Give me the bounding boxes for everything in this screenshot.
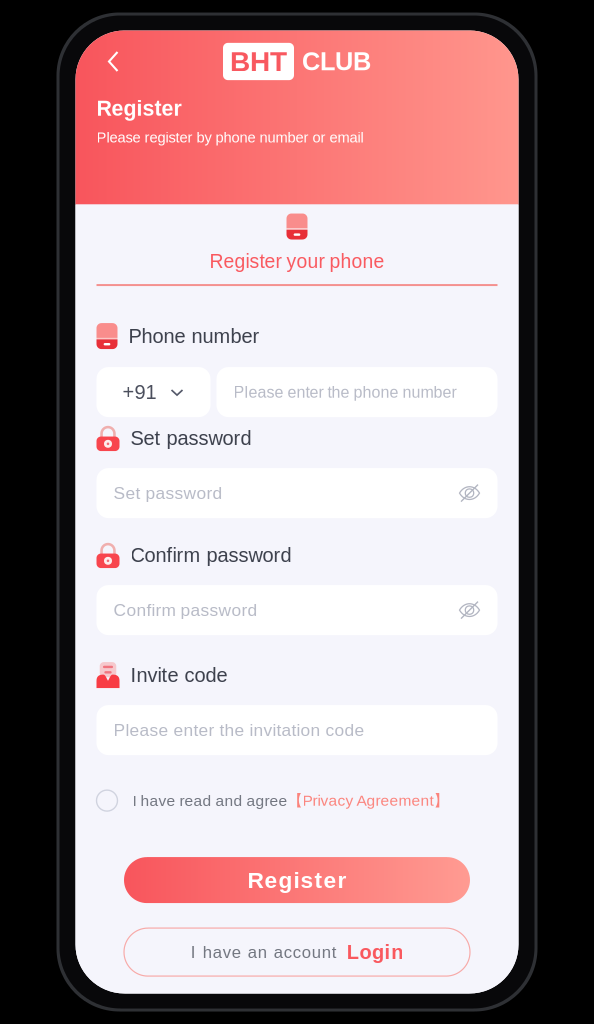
staticText: BHT — [230, 46, 287, 77]
staticText: Login — [347, 941, 403, 963]
staticText: Set password — [113, 483, 222, 503]
staticText: Set password — [130, 427, 251, 449]
staticText: Confirm password — [130, 544, 291, 566]
button[interactable]: Back — [96, 44, 130, 78]
button[interactable]: +91 — [96, 367, 210, 417]
button[interactable]: I have read and agree — [75, 755, 518, 811]
staticText: Please enter the phone number — [233, 383, 456, 401]
staticText: Register your phone — [209, 250, 384, 272]
staticText: Register — [96, 96, 181, 120]
button[interactable]: Register — [124, 857, 470, 903]
button[interactable]: Register your phone — [75, 204, 518, 286]
staticText: I have an account — [191, 943, 337, 961]
staticText: Phone number — [128, 325, 259, 347]
staticText: Confirm password — [113, 600, 257, 620]
staticText: 【Privacy Agreement】 — [287, 791, 448, 810]
staticText: Please register by phone number or email — [96, 129, 363, 146]
staticText: Invite code — [130, 664, 227, 686]
staticText: Register — [247, 867, 346, 893]
staticText: I have read and agree — [132, 792, 287, 809]
staticText: Please enter the invitation code — [113, 720, 364, 740]
button[interactable]: I have an account — [124, 928, 470, 976]
staticText: +91 — [122, 381, 156, 403]
staticText: CLUB — [302, 47, 371, 76]
